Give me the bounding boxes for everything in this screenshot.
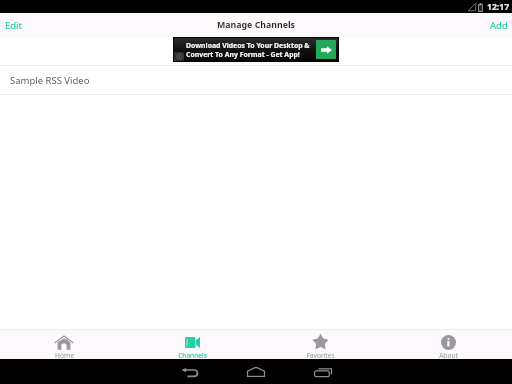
button[interactable]: Home bbox=[0, 330, 128, 359]
button[interactable]: Home bbox=[216, 359, 296, 384]
staticText: Sample RSS Video bbox=[10, 74, 90, 87]
button[interactable]: About bbox=[384, 330, 512, 359]
button[interactable]: Add bbox=[484, 15, 512, 36]
button[interactable]: Edit bbox=[0, 15, 29, 36]
staticText: Manage Channels bbox=[217, 19, 296, 31]
button[interactable]: Download Videos To Your Desktop & bbox=[174, 38, 338, 61]
staticText: Home bbox=[55, 351, 74, 359]
button[interactable]: Favorites bbox=[256, 330, 384, 359]
button[interactable]: Back bbox=[149, 360, 229, 384]
button[interactable]: Sample RSS Video bbox=[0, 66, 512, 94]
staticText: Add bbox=[490, 19, 508, 32]
button[interactable]: Recent apps bbox=[283, 360, 363, 384]
staticText: Channels bbox=[178, 351, 207, 359]
staticText: Download Videos To Your Desktop & bbox=[186, 41, 310, 50]
staticText: Edit bbox=[5, 19, 23, 32]
staticText: 12:17 bbox=[487, 1, 510, 13]
staticText: Favorites bbox=[306, 351, 335, 359]
staticText: About bbox=[439, 351, 458, 359]
button[interactable]: Channels bbox=[128, 330, 256, 359]
staticText: Convert To Any Format - Get App! bbox=[186, 50, 300, 59]
